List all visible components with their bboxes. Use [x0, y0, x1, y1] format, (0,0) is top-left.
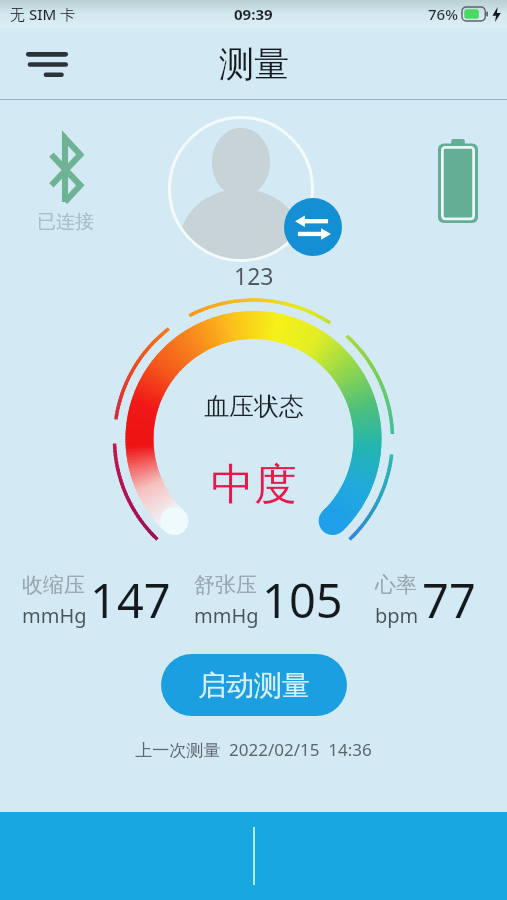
staticText: 76%: [428, 4, 458, 24]
button[interactable]: 收缩压: [10, 568, 182, 632]
staticText: 123: [234, 260, 274, 291]
staticText: 上一次测量 2022/02/15 14:36: [0, 738, 507, 761]
button[interactable]: Menu: [18, 42, 76, 86]
staticText: 105: [262, 568, 343, 632]
button[interactable]: 启动测量: [161, 654, 347, 716]
button[interactable]: 已连接: [20, 138, 110, 234]
staticText: 09:39: [234, 4, 273, 24]
button[interactable]: 舒张压: [182, 568, 354, 632]
staticText: 启动测量: [198, 668, 310, 703]
staticText: 心率: [375, 572, 417, 598]
staticText: 147: [90, 568, 171, 632]
staticText: 血压状态: [204, 391, 304, 422]
button[interactable]: Switch user: [284, 198, 342, 256]
button[interactable]: Device battery: [433, 136, 483, 226]
staticText: bpm: [375, 602, 419, 629]
staticText: 测量: [219, 42, 289, 86]
button[interactable]: 心率: [354, 568, 497, 632]
staticText: 无 SIM 卡: [10, 4, 76, 24]
button[interactable]: [168, 116, 314, 262]
staticText: 收缩压: [22, 572, 85, 598]
staticText: 已连接: [37, 210, 94, 234]
staticText: 77: [422, 568, 476, 632]
staticText: 中度: [211, 458, 297, 512]
staticText: mmHg: [22, 602, 87, 629]
staticText: 舒张压: [194, 572, 257, 598]
staticText: mmHg: [194, 602, 259, 629]
